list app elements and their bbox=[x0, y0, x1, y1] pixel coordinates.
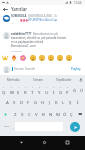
button[interactable]: G bbox=[32, 96, 39, 108]
button[interactable]: Ç bbox=[68, 108, 75, 120]
staticText: H bbox=[41, 99, 45, 105]
button[interactable]: İ bbox=[74, 96, 81, 108]
staticText: Y bbox=[38, 89, 41, 95]
staticText: Z bbox=[14, 111, 17, 117]
staticText: Ş bbox=[69, 99, 72, 105]
button[interactable]: Ö bbox=[61, 108, 68, 120]
staticText: Ğ bbox=[73, 87, 77, 93]
staticText: İ bbox=[77, 99, 79, 105]
staticText: 5 bbox=[32, 86, 34, 89]
staticText: F bbox=[27, 99, 30, 105]
button[interactable]: 2 bbox=[8, 84, 15, 96]
staticText: X bbox=[21, 111, 24, 117]
button[interactable]: D bbox=[18, 96, 25, 108]
button[interactable]: Ğ bbox=[71, 84, 78, 96]
button[interactable]: 6 bbox=[36, 84, 43, 96]
button[interactable]: Back bbox=[15, 136, 27, 148]
button[interactable]: Emoji bbox=[29, 53, 37, 63]
button[interactable]: X bbox=[19, 108, 26, 120]
button[interactable]: 4 bbox=[22, 84, 29, 96]
staticText: J bbox=[49, 99, 51, 105]
button[interactable]: M bbox=[54, 108, 61, 120]
button[interactable]: V bbox=[33, 108, 40, 120]
staticText: O bbox=[59, 89, 63, 95]
button[interactable]: L bbox=[60, 96, 67, 108]
button[interactable]: Send bbox=[70, 122, 80, 132]
staticText: Yanıtlar bbox=[11, 6, 28, 12]
button[interactable]: J bbox=[46, 96, 53, 108]
button[interactable]: Home bbox=[38, 136, 50, 148]
staticText: Ç bbox=[70, 111, 73, 117]
staticText: S bbox=[13, 99, 16, 105]
button[interactable]: Emoji bbox=[19, 53, 27, 63]
button[interactable]: Back bbox=[0, 5, 11, 13]
staticText: 2 bbox=[11, 86, 13, 89]
staticText: B bbox=[42, 111, 45, 117]
button[interactable]: Paylaş bbox=[70, 66, 82, 72]
staticText: N bbox=[49, 111, 53, 117]
staticText: Paylaşılan bbox=[11, 49, 23, 52]
staticText: 0 bbox=[67, 86, 69, 89]
button[interactable]: Emoji bbox=[47, 53, 55, 63]
staticText: 4 bbox=[25, 86, 27, 89]
button[interactable]: 0 bbox=[64, 84, 71, 96]
staticText: Bonusboost en çok bbox=[33, 32, 59, 36]
button[interactable]: Recent apps bbox=[61, 136, 73, 148]
staticText: V bbox=[35, 111, 38, 117]
button[interactable]: Emoji bbox=[56, 53, 64, 63]
staticText: M bbox=[56, 111, 60, 117]
staticText: K bbox=[55, 99, 58, 105]
staticText: A bbox=[6, 99, 9, 105]
button[interactable]: C bbox=[26, 108, 33, 120]
staticText: , bbox=[13, 125, 14, 129]
button[interactable]: Emoji bbox=[38, 53, 46, 63]
staticText: 1 bbox=[3, 86, 5, 89]
button[interactable]: K bbox=[53, 96, 60, 108]
button[interactable]: N bbox=[47, 108, 54, 120]
button[interactable]: S bbox=[11, 96, 18, 108]
staticText: . bbox=[66, 125, 67, 129]
staticText: 3 bbox=[18, 86, 20, 89]
button[interactable]: Emoji bbox=[65, 53, 73, 63]
button[interactable]: 1 bbox=[0, 84, 8, 96]
staticText: 7 bbox=[46, 86, 48, 89]
button[interactable]: Tamam bbox=[26, 75, 51, 84]
staticText: m ve paylaşanları orbital bbox=[11, 40, 44, 44]
button[interactable]: 5 bbox=[29, 84, 36, 96]
button[interactable]: Ş bbox=[67, 96, 74, 108]
button[interactable]: A bbox=[4, 96, 11, 108]
button[interactable]: 8 bbox=[50, 84, 57, 96]
button[interactable]: F bbox=[25, 96, 32, 108]
button[interactable]: Merhaba bbox=[0, 75, 26, 84]
button[interactable]: H bbox=[39, 96, 46, 108]
staticText: Ö bbox=[63, 111, 67, 117]
button[interactable]: B bbox=[40, 108, 47, 120]
staticText: #TÜRKİYEninEuroCup bbox=[28, 18, 58, 22]
staticText: 6 bbox=[39, 86, 41, 89]
button[interactable]: 7 bbox=[43, 84, 50, 96]
button[interactable]: 9 bbox=[57, 84, 64, 96]
staticText: D bbox=[20, 99, 24, 105]
button[interactable]: Backspace bbox=[75, 108, 85, 120]
button[interactable]: Voice input bbox=[76, 75, 85, 84]
button[interactable]: Z bbox=[11, 108, 19, 120]
staticText: C bbox=[28, 111, 31, 117]
button[interactable]: Emoji bbox=[1, 53, 9, 63]
staticText: Teşekkürler bbox=[56, 78, 72, 82]
staticText: Q bbox=[2, 89, 6, 95]
staticText: I bbox=[53, 89, 55, 95]
button[interactable]: 3 bbox=[15, 84, 22, 96]
button[interactable]: Teşekkürler bbox=[51, 75, 76, 84]
staticText: 8 bbox=[53, 86, 55, 89]
staticText: E bbox=[17, 89, 20, 95]
staticText: U bbox=[45, 89, 49, 95]
button[interactable]: Shift bbox=[0, 108, 11, 120]
staticText: 9 bbox=[60, 86, 62, 89]
button[interactable]: Ü bbox=[78, 84, 85, 96]
button[interactable]: Emoji bbox=[10, 53, 18, 63]
button[interactable]: , bbox=[12, 122, 15, 131]
staticText: 2s bbox=[54, 14, 57, 18]
button[interactable]: ?123 bbox=[1, 122, 11, 131]
